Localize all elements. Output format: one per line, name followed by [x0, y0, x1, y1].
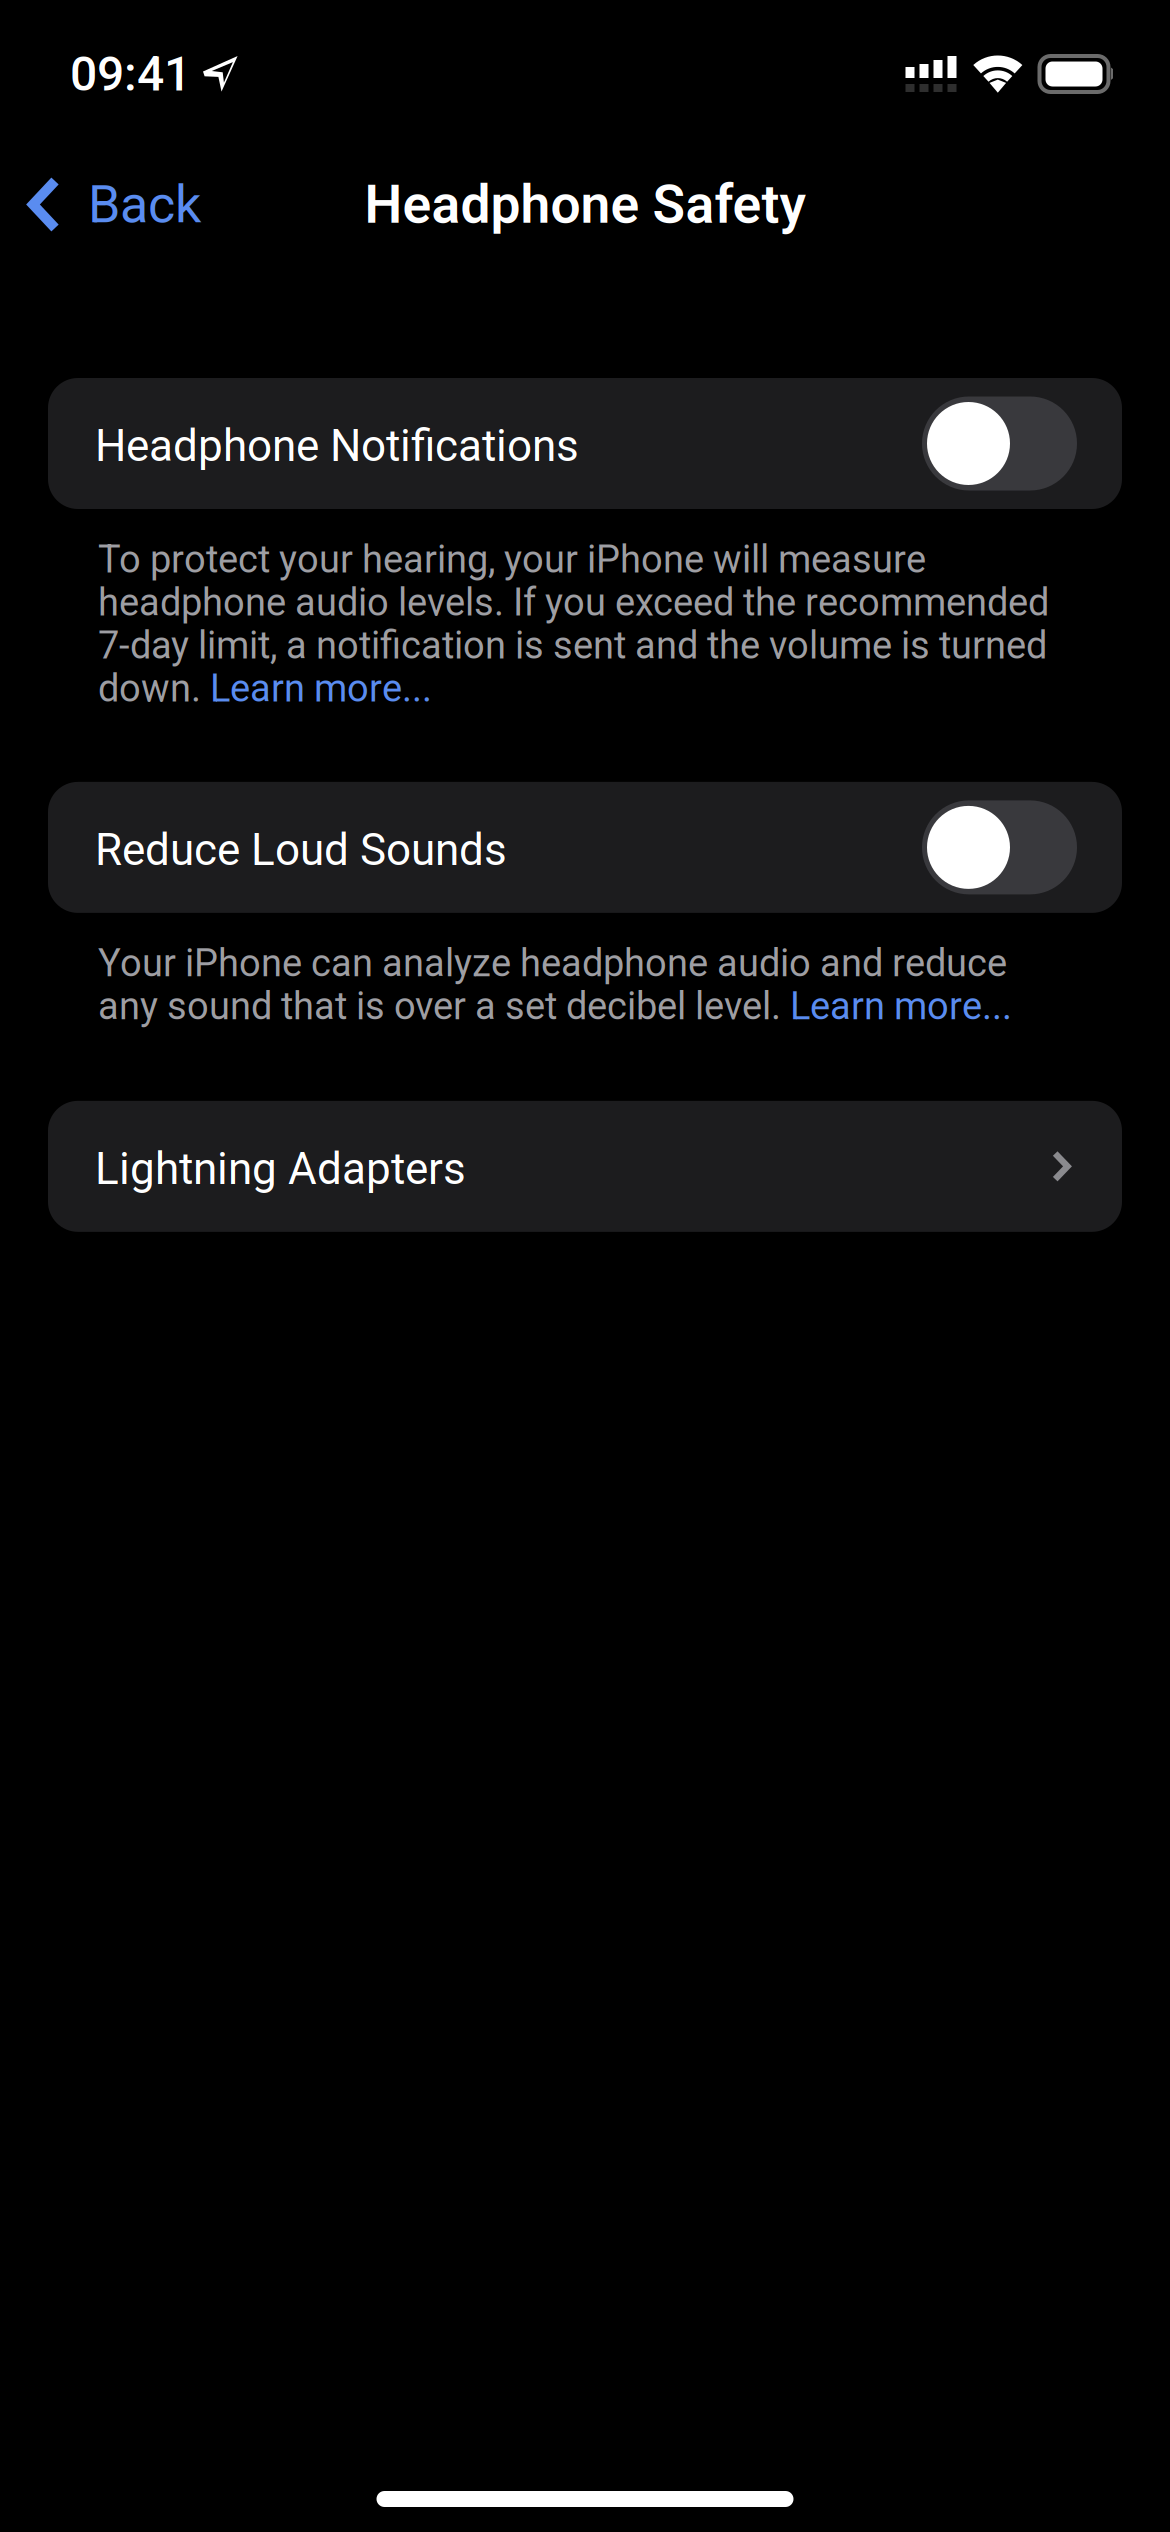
- button[interactable]: Back: [0, 158, 219, 251]
- button[interactable]: Lightning Adapters: [48, 1101, 1122, 1232]
- staticText: To protect your hearing, your iPhone wil…: [98, 538, 1049, 710]
- staticText: 09:41: [70, 46, 191, 102]
- staticText: Reduce Loud Sounds: [95, 824, 507, 876]
- staticText: Headphone Safety: [364, 173, 805, 236]
- button[interactable]: Reduce Loud Sounds: [48, 782, 1122, 913]
- staticText: Your iPhone can analyze headphone audio …: [98, 942, 1012, 1028]
- staticText: Back: [88, 174, 201, 235]
- staticText: Headphone Notifications: [95, 420, 579, 472]
- staticText: Lightning Adapters: [95, 1143, 466, 1195]
- button[interactable]: Headphone Notifications: [48, 378, 1122, 509]
